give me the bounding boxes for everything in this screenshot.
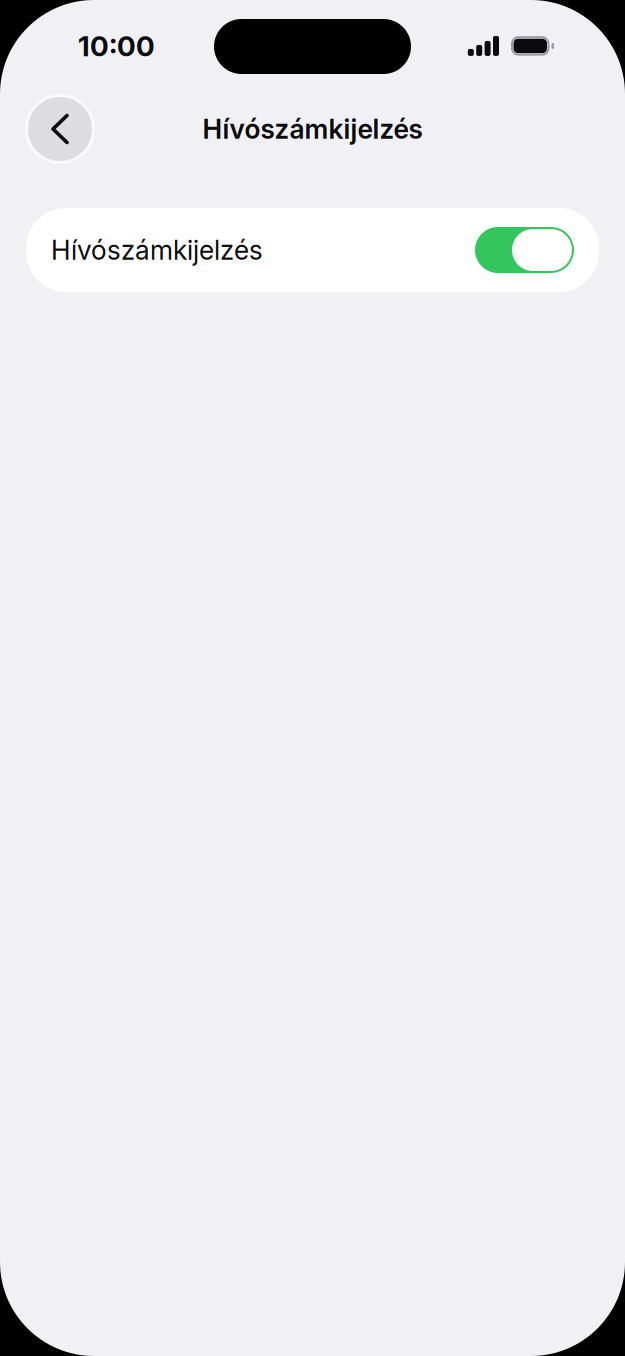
staticText: Hívószámkijelzés [202, 113, 422, 145]
staticText: Hívószámkijelzés [51, 234, 263, 266]
staticText: 10:00 [78, 29, 155, 63]
button[interactable]: Hívószámkijelzés [26, 208, 599, 292]
button[interactable]: Back [25, 94, 95, 164]
